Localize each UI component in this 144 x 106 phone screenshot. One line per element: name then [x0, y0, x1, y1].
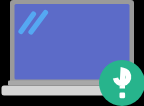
button[interactable]: Laptop with help question mark illustrat… — [0, 0, 144, 106]
